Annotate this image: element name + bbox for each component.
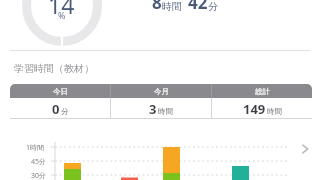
staticText: 時間 (158, 107, 173, 116)
staticText: 時間 (162, 0, 182, 13)
staticText: % (58, 9, 66, 21)
staticText: 45分 (31, 157, 47, 167)
staticText: 今月 (154, 87, 169, 96)
button[interactable]: 次へ (294, 138, 316, 160)
staticText: 学習時間（教材） (14, 62, 94, 75)
staticText: 1時間 (26, 143, 45, 153)
staticText: 3 (149, 100, 157, 118)
button[interactable]: 今日 (10, 84, 312, 119)
staticText: 総計 (255, 87, 270, 96)
staticText: 今日 (53, 87, 68, 96)
staticText: 分 (208, 0, 218, 13)
staticText: 14 (48, 0, 75, 20)
staticText: 0 (52, 100, 60, 118)
staticText: 30分 (31, 171, 47, 180)
staticText: 42 (188, 0, 208, 14)
staticText: 分 (61, 107, 69, 116)
staticText: 時間 (267, 107, 282, 116)
staticText: 8 (152, 0, 162, 14)
staticText: 149 (243, 100, 266, 118)
button[interactable]: 1時間 (0, 128, 320, 180)
